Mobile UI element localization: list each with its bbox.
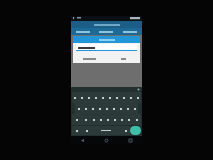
button[interactable] [124,103,131,114]
button[interactable] [72,92,78,103]
button[interactable] [75,103,82,114]
button[interactable] [82,114,90,125]
button[interactable]: Home [94,136,118,144]
button[interactable]: Emoji [82,126,91,135]
button[interactable] [113,92,120,103]
button[interactable] [120,92,127,103]
button[interactable] [127,92,134,103]
button[interactable] [118,114,125,125]
button[interactable] [104,114,111,125]
button[interactable] [76,44,137,51]
button[interactable] [106,92,113,103]
button[interactable] [96,103,103,114]
button[interactable] [97,114,104,125]
button[interactable]: Tab 2 [94,28,118,35]
button[interactable] [92,92,99,103]
button[interactable]: Tab 1 [71,28,94,35]
button[interactable] [111,114,118,125]
button[interactable] [90,114,97,125]
button[interactable] [134,92,141,103]
button[interactable] [125,114,132,125]
button[interactable] [110,103,117,114]
other: Voice input [137,88,140,91]
button[interactable]: Backspace [132,114,141,125]
button[interactable]: Recents [118,136,142,144]
button[interactable] [85,92,92,103]
button[interactable] [103,103,110,114]
button[interactable]: Send [130,126,141,135]
button[interactable]: Back [71,136,94,144]
button[interactable]: Space [91,126,121,135]
button[interactable] [106,55,140,63]
button[interactable] [99,92,106,103]
button[interactable] [89,103,96,114]
button[interactable]: Shift [72,114,82,125]
button[interactable] [82,103,89,114]
button[interactable]: Symbols [72,126,82,135]
button[interactable] [117,103,124,114]
button[interactable]: Tab 3 [118,28,142,35]
button[interactable] [73,55,106,63]
button[interactable] [131,103,138,114]
button[interactable] [78,92,85,103]
button[interactable]: Period [121,126,130,135]
